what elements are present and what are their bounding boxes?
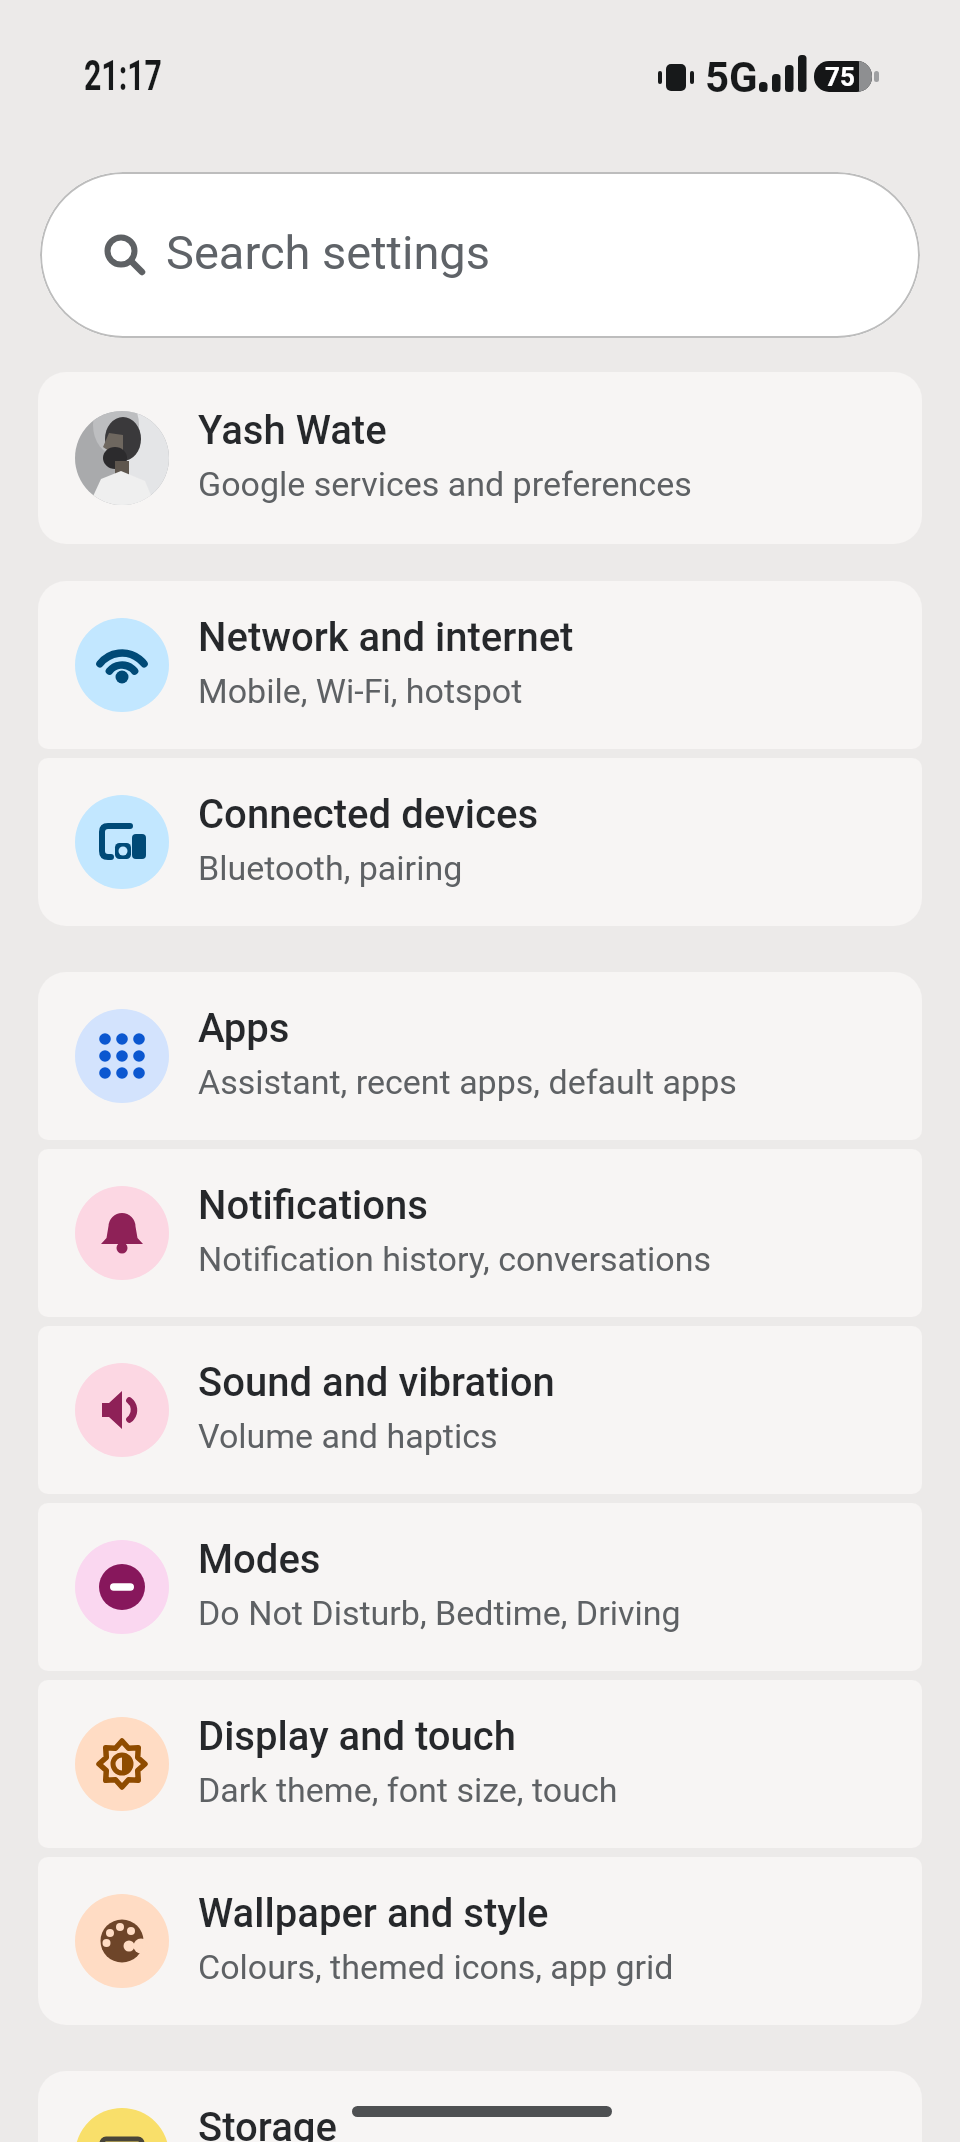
button[interactable]: Modes [38, 1503, 922, 1671]
button[interactable]: Display and touch [38, 1680, 922, 1848]
staticText: Google services and preferences [198, 464, 692, 504]
button[interactable]: Connected devices [38, 758, 922, 926]
staticText: Sound and vibration [198, 1359, 555, 1406]
button[interactable]: Network and internet [38, 581, 922, 749]
staticText: Wallpaper and style [198, 1890, 549, 1937]
staticText: Apps [198, 1005, 290, 1052]
staticText: Notifications [198, 1182, 428, 1229]
staticText: Search settings [166, 225, 490, 280]
staticText: Colours, themed icons, app grid [198, 1947, 674, 1987]
staticText: Assistant, recent apps, default apps [198, 1062, 737, 1102]
staticText: 75 [825, 62, 855, 92]
staticText: Notification history, conversations [198, 1239, 712, 1279]
button[interactable]: Yash Wate [38, 372, 922, 544]
staticText: Display and touch [198, 1713, 516, 1760]
staticText: 21:17 [84, 51, 162, 100]
staticText: Do Not Disturb, Bedtime, Driving [198, 1593, 681, 1633]
staticText: Connected devices [198, 791, 539, 838]
staticText: 5G [705, 53, 758, 102]
staticText: Volume and haptics [198, 1416, 498, 1456]
button[interactable]: Sound and vibration [38, 1326, 922, 1494]
staticText: Yash Wate [198, 407, 387, 454]
staticText: Modes [198, 1536, 321, 1583]
button[interactable]: Wallpaper and style [38, 1857, 922, 2025]
button[interactable]: Apps [38, 972, 922, 1140]
staticText: Network and internet [198, 614, 574, 661]
staticText: Storage [198, 2104, 337, 2142]
staticText: Bluetooth, pairing [198, 848, 463, 888]
staticText: Dark theme, font size, touch [198, 1770, 618, 1810]
button[interactable]: Notifications [38, 1149, 922, 1317]
staticText: Mobile, Wi-Fi, hotspot [198, 671, 523, 711]
button[interactable]: Search settings [40, 172, 920, 338]
button[interactable]: Storage [38, 2071, 922, 2142]
